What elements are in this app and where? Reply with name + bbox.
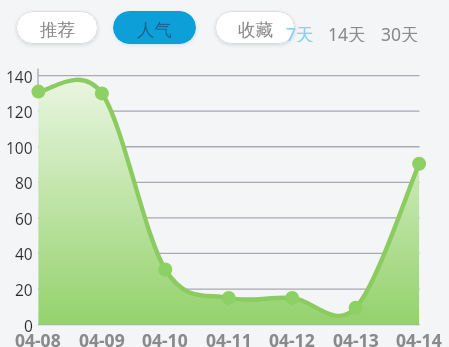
button[interactable]: 人气 (113, 11, 196, 44)
staticText: 120 (6, 101, 33, 121)
button[interactable]: 14天 (328, 22, 366, 42)
staticText: 100 (6, 137, 33, 157)
staticText: 04-11 (206, 328, 252, 347)
button[interactable]: 收藏 (215, 11, 295, 44)
staticText: 人气 (137, 19, 172, 41)
staticText: 20 (15, 279, 33, 299)
staticText: 40 (15, 243, 33, 263)
staticText: 80 (15, 172, 33, 192)
staticText: 收藏 (238, 19, 273, 41)
staticText: 04-14 (396, 328, 442, 347)
staticText: 04-09 (79, 328, 125, 347)
button[interactable]: 推荐 (16, 11, 98, 44)
staticText: 04-10 (142, 328, 188, 347)
staticText: 7天 (286, 22, 314, 42)
staticText: 140 (6, 66, 33, 86)
staticText: 14天 (328, 22, 366, 42)
button[interactable]: 7天 (286, 22, 314, 42)
staticText: 0 (24, 315, 33, 335)
staticText: 60 (15, 208, 33, 228)
button[interactable]: 30天 (381, 22, 419, 42)
staticText: 30天 (381, 22, 419, 42)
staticText: 04-12 (269, 328, 315, 347)
staticText: 04-08 (15, 328, 61, 347)
staticText: 推荐 (40, 19, 75, 41)
staticText: 04-13 (333, 328, 379, 347)
